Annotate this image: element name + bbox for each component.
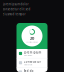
staticText: Consectetur [24, 60, 41, 63]
staticText: consectetur elit sed [2, 7, 30, 11]
button[interactable]: Consectetur [16, 58, 47, 67]
staticText: adipiscing elit [24, 64, 32, 66]
staticText: eiusmod tempor [2, 12, 25, 16]
staticText: Lorem ipsum dolor [2, 2, 28, 6]
staticText: 20 [30, 35, 34, 41]
button[interactable]: Lorem ipsum [16, 49, 47, 58]
staticText: Sed do [24, 69, 34, 72]
staticText: Lorem ipsum dolor [25, 41, 38, 43]
staticText: Lorem ipsum [24, 51, 41, 54]
staticText: dolor sit amet [24, 54, 32, 56]
button[interactable]: Sed do [16, 67, 47, 72]
